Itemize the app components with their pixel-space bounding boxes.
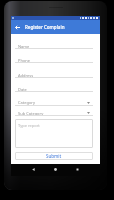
staticText: Date: [18, 87, 27, 92]
button[interactable]: Back: [31, 167, 36, 172]
button[interactable]: Sub Category: [15, 111, 93, 116]
staticText: Submit: [46, 153, 62, 159]
button[interactable]: Phone: [15, 58, 93, 63]
staticText: Sub Category: [18, 111, 44, 116]
button[interactable]: Name: [15, 44, 93, 49]
button[interactable]: Address: [15, 73, 93, 78]
button[interactable]: Navigate up: [12, 22, 23, 33]
button[interactable]: Home: [53, 167, 58, 172]
staticText: Type report: [18, 123, 40, 128]
staticText: Register Complain: [25, 24, 65, 30]
button[interactable]: Date: [15, 87, 93, 92]
button[interactable]: Submit: [15, 152, 93, 160]
staticText: Phone: [18, 58, 31, 63]
button[interactable]: Recent apps: [75, 167, 80, 172]
staticText: Address: [18, 73, 34, 78]
staticText: Category: [18, 100, 36, 105]
button[interactable]: Category: [15, 100, 93, 106]
button[interactable]: Type report: [15, 119, 93, 148]
staticText: Name: [18, 44, 30, 49]
